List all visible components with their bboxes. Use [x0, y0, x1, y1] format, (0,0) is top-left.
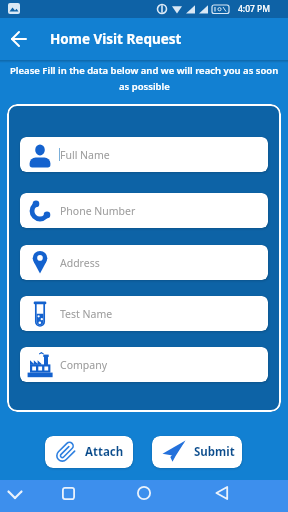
button[interactable]: Full Name	[20, 137, 268, 172]
staticText: Company	[60, 358, 107, 372]
staticText: Home Visit Request	[50, 30, 182, 48]
button[interactable]	[52, 480, 84, 506]
staticText: Attach	[85, 444, 124, 460]
button[interactable]: Attach	[45, 436, 133, 468]
button[interactable]	[128, 480, 160, 506]
button[interactable]: Test Name	[20, 296, 268, 331]
button[interactable]: Company	[20, 347, 268, 382]
staticText: as possible	[119, 80, 170, 93]
button[interactable]	[4, 24, 34, 54]
staticText: Submit	[194, 444, 235, 460]
staticText: Phone Number	[60, 204, 136, 218]
button[interactable]: Phone Number	[20, 193, 268, 228]
button[interactable]: Submit	[152, 436, 242, 468]
staticText: Test Name	[60, 307, 113, 321]
staticText: 4:07 PM	[238, 3, 271, 15]
button[interactable]	[0, 480, 29, 509]
staticText: Please Fill in the data below and we wil…	[10, 64, 279, 77]
button[interactable]	[206, 480, 238, 506]
button[interactable]: Address	[20, 245, 268, 280]
staticText: Full Name	[60, 148, 110, 162]
staticText: Address	[60, 256, 100, 270]
